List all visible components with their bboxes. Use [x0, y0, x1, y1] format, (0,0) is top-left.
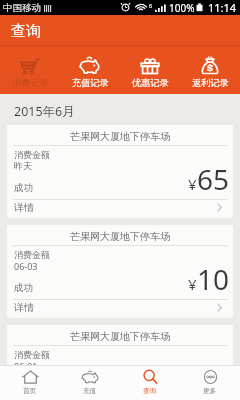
button[interactable]: Recharge	[60, 366, 120, 400]
button[interactable]: Search	[120, 366, 180, 400]
button[interactable]: 芒果网大厦地下停车场	[7, 125, 233, 218]
button[interactable]: More	[180, 366, 240, 400]
staticText: 芒果网大厦地下停车场	[70, 130, 170, 143]
button[interactable]: 充值记录	[60, 46, 120, 94]
button[interactable]: 优惠记录	[120, 46, 180, 94]
staticText: 芒果网大厦地下停车场	[70, 330, 170, 343]
staticText: 更多	[203, 387, 217, 395]
staticText: 100%	[169, 1, 195, 15]
staticText: 返利记录	[192, 77, 229, 89]
staticText: 首页	[23, 387, 37, 395]
staticText: 充值	[83, 387, 97, 395]
staticText: ¥	[188, 274, 197, 294]
button[interactable]: 返利记录	[180, 46, 240, 94]
staticText: 消费记录	[12, 77, 49, 89]
button[interactable]: 芒果网大厦地下停车场	[7, 325, 233, 365]
staticText: 查询	[11, 22, 41, 41]
staticText: 成功	[14, 282, 33, 294]
staticText: 6	[149, 2, 153, 9]
staticText: 中国移动	[3, 2, 41, 14]
staticText: ¥	[188, 174, 197, 194]
staticText: 06-03	[14, 260, 38, 272]
button[interactable]: 消费记录	[0, 46, 60, 94]
staticText: 详情	[14, 201, 34, 214]
button[interactable]: Home	[0, 366, 60, 400]
staticText: 查询	[143, 387, 157, 395]
staticText: 06-01	[14, 360, 38, 365]
button[interactable]: 芒果网大厦地下停车场	[7, 225, 233, 318]
staticText: 消费金额	[14, 149, 50, 160]
staticText: 消费金额	[14, 249, 50, 260]
staticText: 详情	[14, 301, 34, 314]
staticText: 昨天	[14, 160, 32, 171]
staticText: 充值记录	[72, 77, 109, 89]
staticText: 优惠记录	[132, 77, 169, 89]
staticText: 65	[197, 160, 230, 198]
staticText: 成功	[14, 182, 33, 194]
staticText: 消费金额	[14, 349, 50, 360]
staticText: 2015年6月	[14, 103, 75, 120]
staticText: 11:14	[208, 0, 237, 15]
staticText: 芒果网大厦地下停车场	[70, 230, 170, 243]
staticText: 10	[197, 260, 230, 298]
